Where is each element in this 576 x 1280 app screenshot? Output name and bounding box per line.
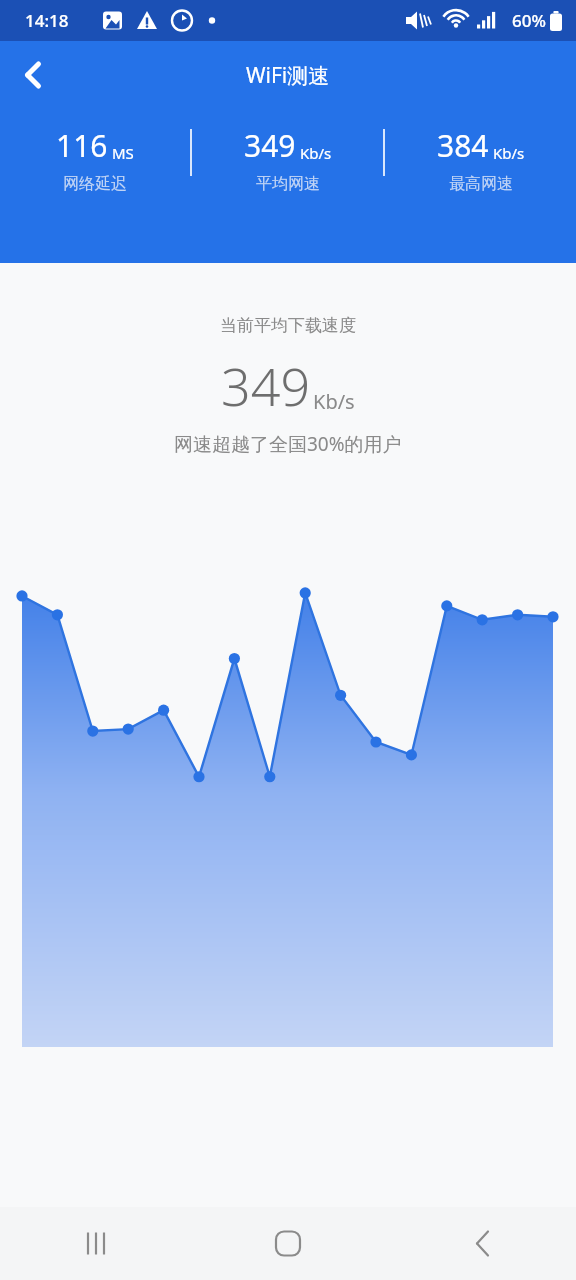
button[interactable]: Back xyxy=(384,1207,576,1280)
button[interactable]: Home xyxy=(192,1207,384,1280)
staticText: Kb/s xyxy=(300,143,332,163)
staticText: Kb/s xyxy=(493,143,525,163)
button[interactable]: Back xyxy=(10,53,54,97)
staticText: 384 xyxy=(437,125,489,166)
staticText: 网络延迟 xyxy=(63,174,127,194)
staticText: 349 xyxy=(244,125,296,166)
staticText: 当前平均下载速度 xyxy=(220,315,356,336)
staticText: 349 xyxy=(221,350,311,421)
button[interactable]: Recents xyxy=(0,1207,192,1280)
staticText: MS xyxy=(112,143,134,163)
staticText: 网速超越了全国30%的用户 xyxy=(174,431,402,457)
staticText: Kb/s xyxy=(313,388,355,415)
staticText: 14:18 xyxy=(25,9,69,32)
staticText: 平均网速 xyxy=(256,174,320,194)
staticText: 60% xyxy=(512,9,546,32)
staticText: 最高网速 xyxy=(449,174,513,194)
staticText: WiFi测速 xyxy=(246,61,330,90)
staticText: 116 xyxy=(56,125,108,166)
